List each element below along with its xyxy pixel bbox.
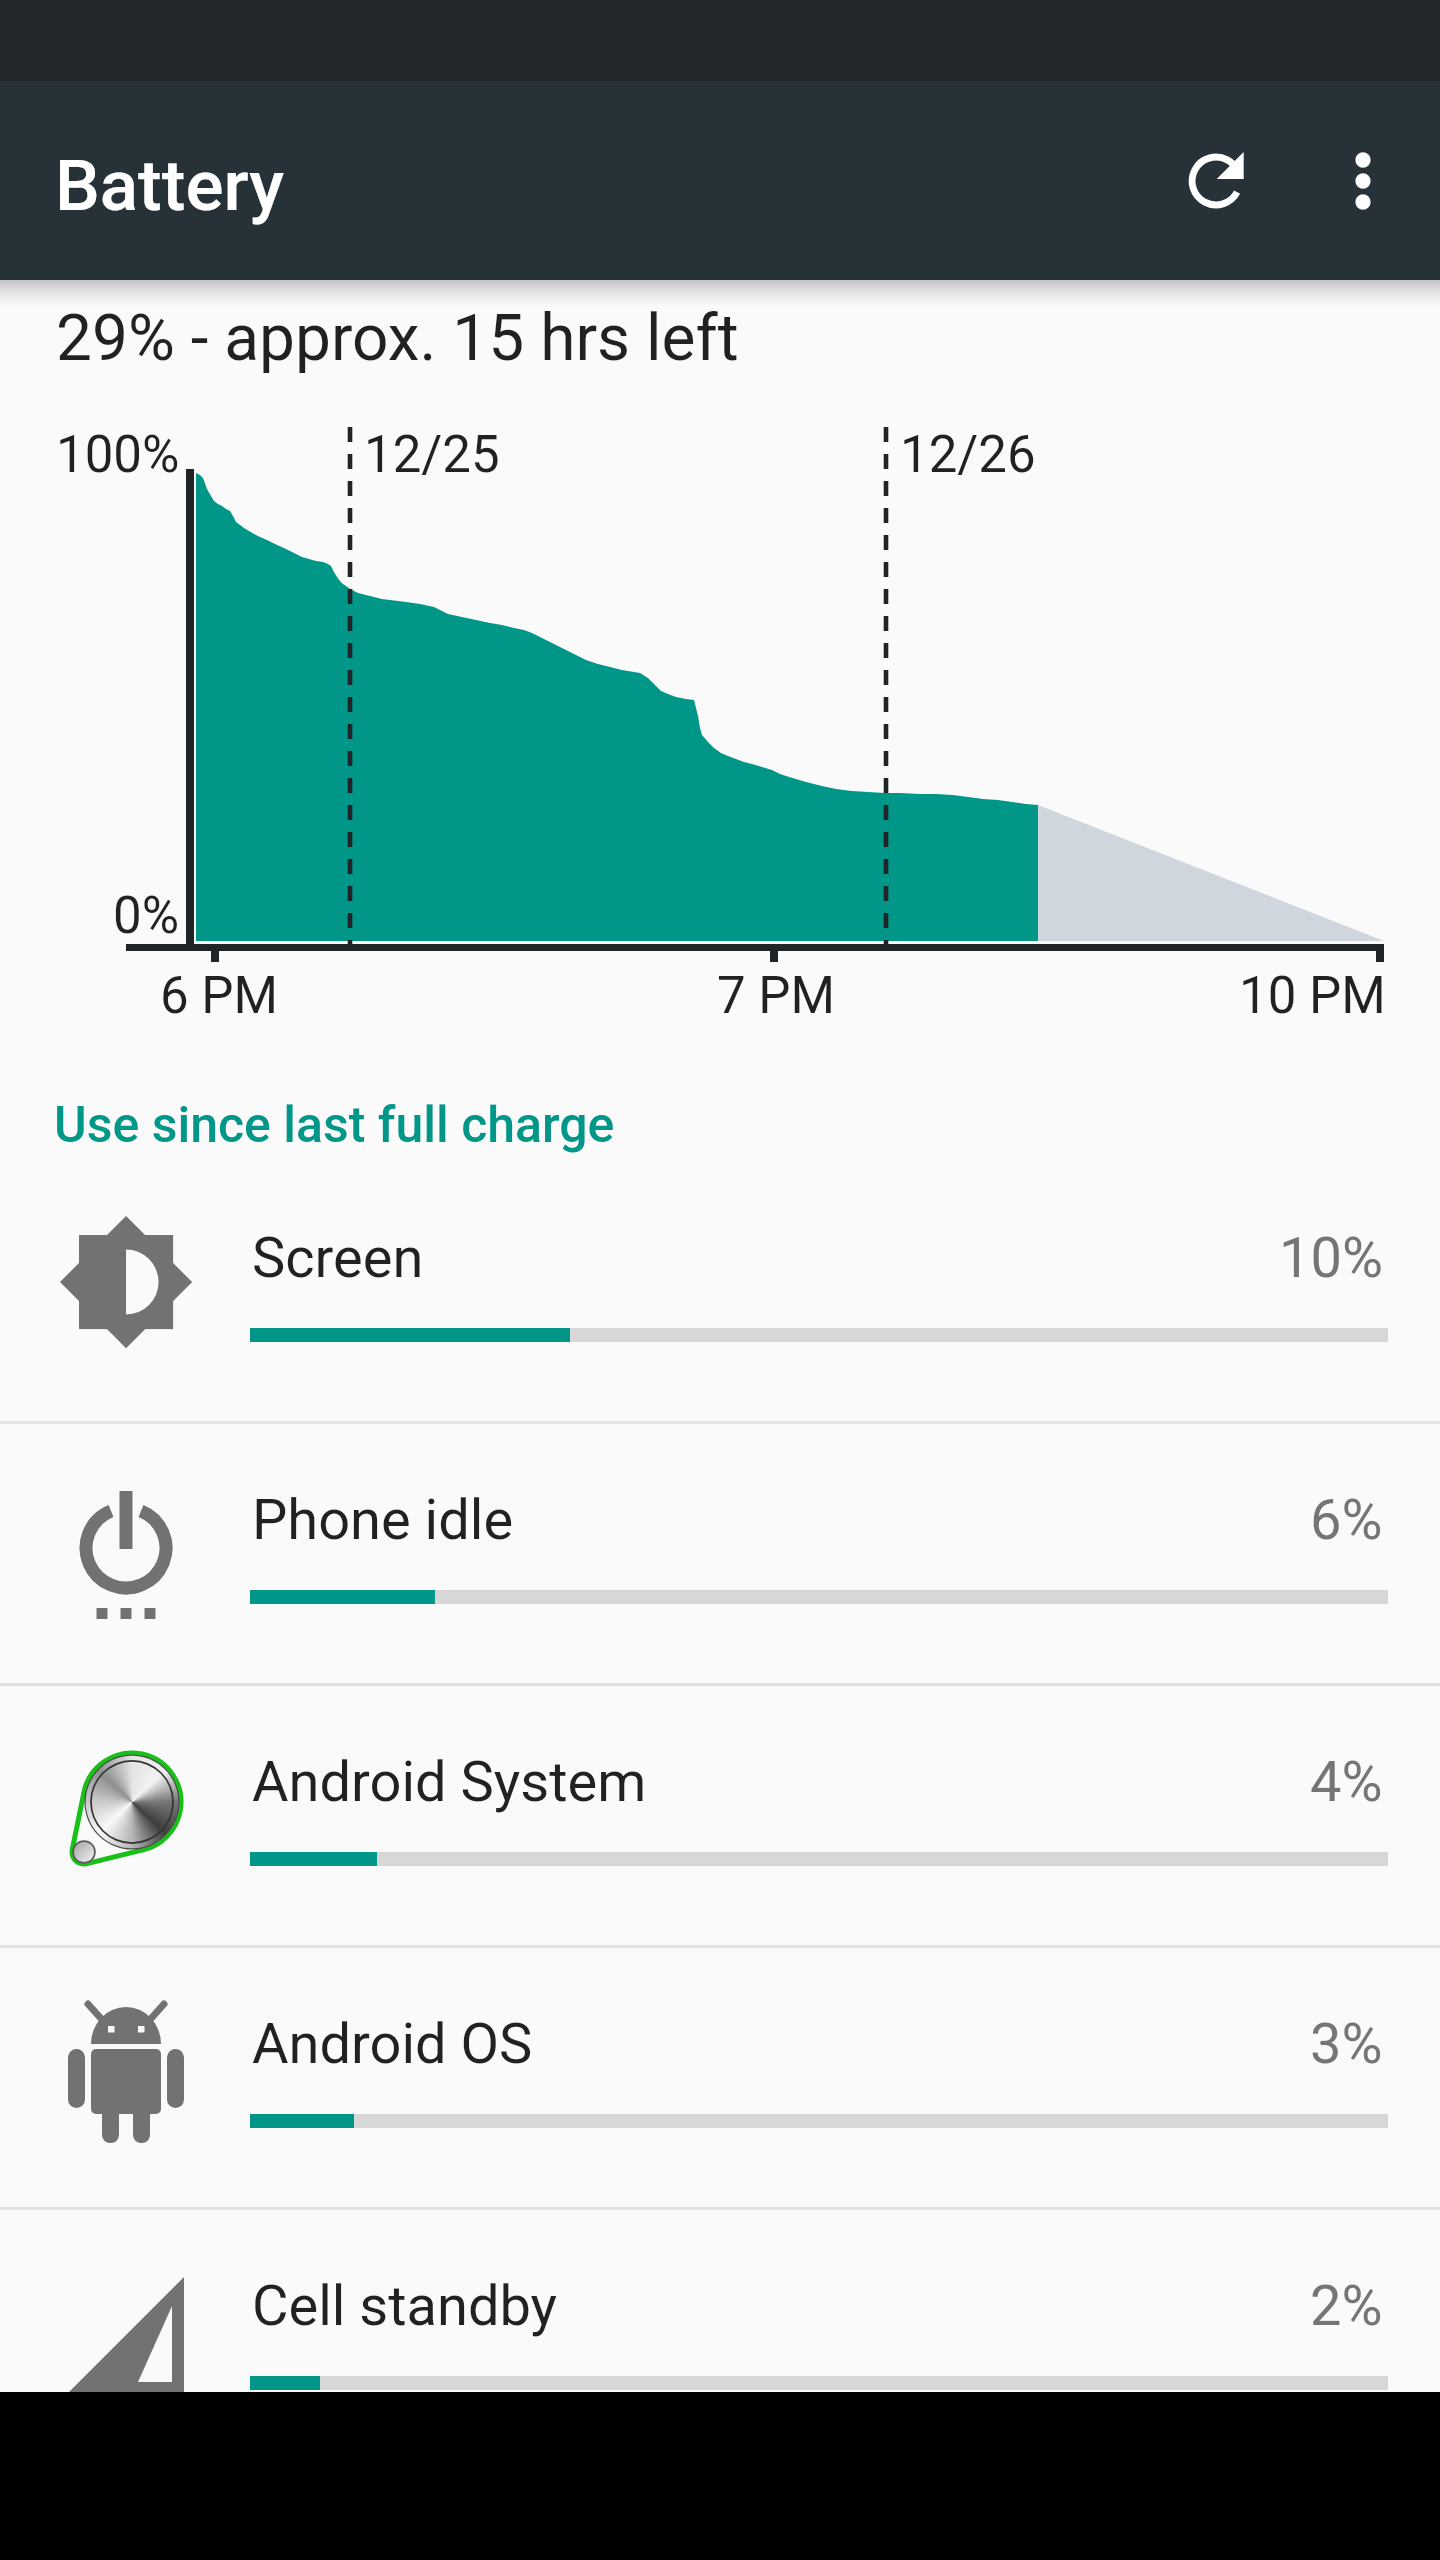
staticText: 7 PM [717, 966, 836, 1026]
staticText: 12/26 [900, 425, 1036, 485]
staticText: 10% [1279, 1225, 1383, 1291]
staticText: Cell standby [252, 2273, 558, 2339]
staticText: 100% [56, 425, 180, 485]
staticText: Android System [252, 1749, 647, 1815]
button[interactable]: Cell standby [0, 2208, 1440, 2470]
staticText: 2% [1310, 2273, 1383, 2339]
button[interactable]: Refresh [1144, 109, 1288, 253]
staticText: Android OS [252, 2011, 533, 2077]
button[interactable]: Phone idle [0, 1422, 1440, 1684]
staticText: 12/25 [364, 425, 500, 485]
staticText: 10 PM [1239, 966, 1386, 1026]
staticText: Battery [55, 144, 284, 227]
staticText: 3% [1310, 2011, 1383, 2077]
staticText: 6 PM [160, 966, 279, 1026]
staticText: 0% [113, 886, 180, 946]
staticText: Screen [252, 1225, 424, 1291]
button[interactable]: Android OS [0, 1946, 1440, 2208]
staticText: Phone idle [252, 1487, 514, 1553]
staticText: 6% [1310, 1487, 1383, 1553]
staticText: Use since last full charge [54, 1096, 615, 1155]
button[interactable]: Screen [0, 1160, 1440, 1422]
staticText: 29% - approx. 15 hrs left [56, 301, 739, 376]
button[interactable]: More options [1291, 109, 1435, 253]
staticText: 4% [1310, 1749, 1383, 1815]
button[interactable]: Android System [0, 1684, 1440, 1946]
